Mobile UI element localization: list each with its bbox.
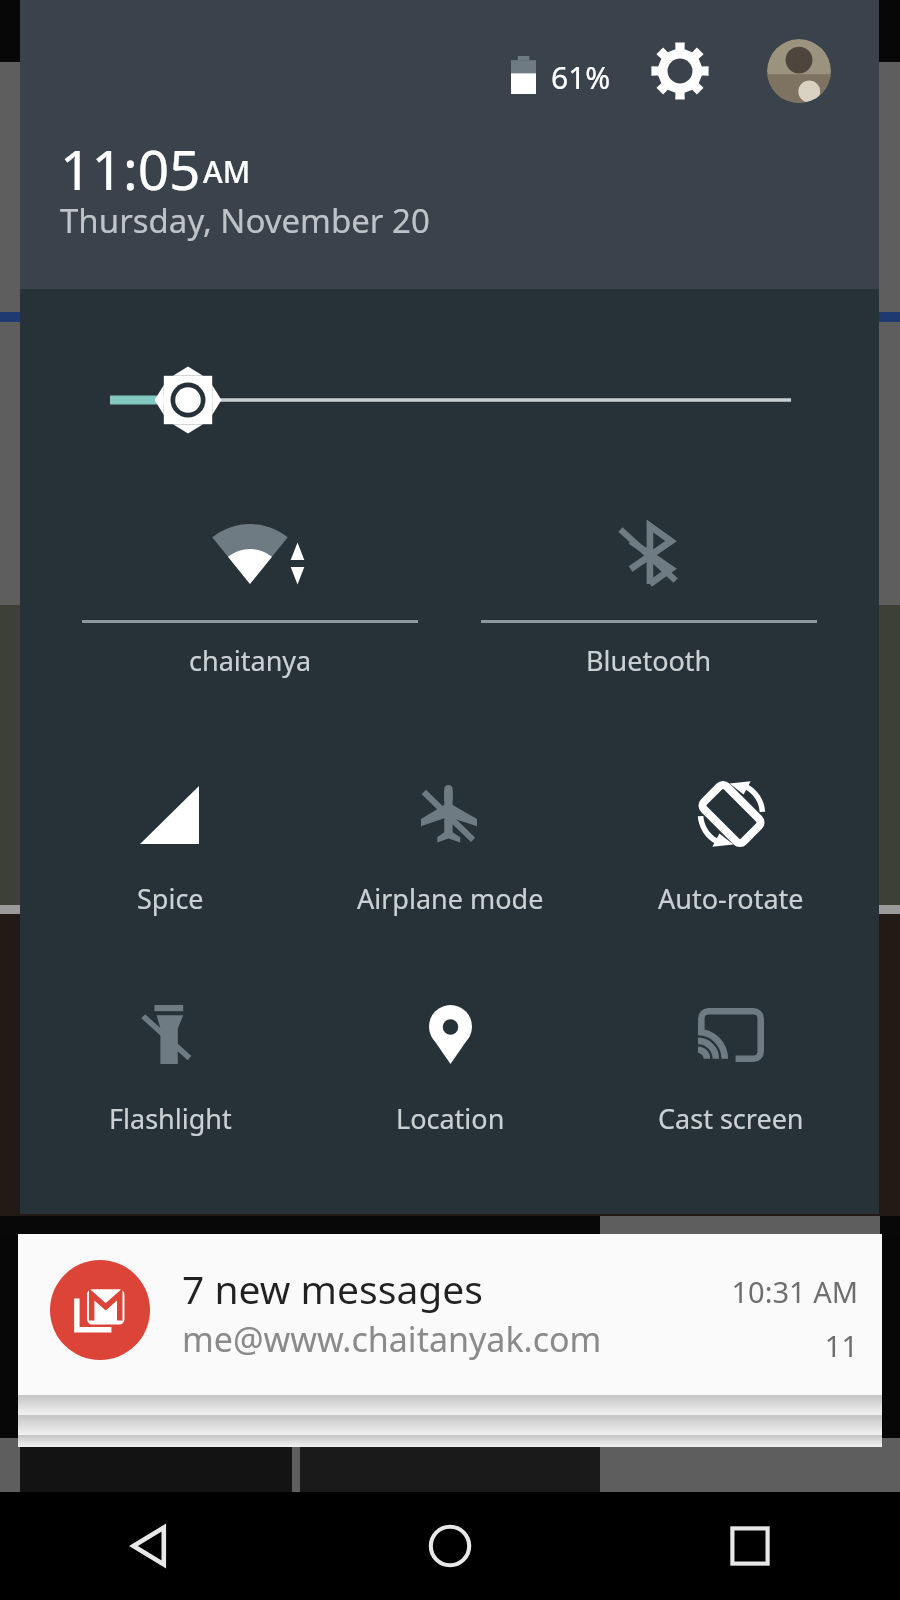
staticText: me@www.chaitanyak.com <box>182 1316 602 1362</box>
staticText: 7 new messages <box>182 1262 483 1315</box>
button[interactable]: Settings <box>645 36 715 106</box>
button[interactable] <box>50 980 290 1150</box>
staticText: Spice <box>137 880 204 917</box>
button[interactable]: Recent apps <box>600 1492 900 1600</box>
button[interactable]: User profile <box>767 39 831 103</box>
button[interactable]: Back <box>0 1492 300 1600</box>
button[interactable] <box>611 980 851 1150</box>
staticText: Airplane mode <box>357 880 544 917</box>
staticText: 10:31 AM <box>698 1272 858 1311</box>
staticText: Location <box>396 1100 505 1137</box>
button[interactable]: 7 new messages <box>18 1234 882 1395</box>
staticText: AM <box>203 151 251 192</box>
staticText: Thursday, November 20 <box>60 198 430 243</box>
button[interactable] <box>330 760 570 930</box>
staticText: Cast screen <box>658 1100 804 1137</box>
staticText: chaitanya <box>189 642 312 679</box>
staticText: Auto-rotate <box>658 880 804 917</box>
button[interactable] <box>481 500 817 690</box>
staticText: 61% <box>551 57 611 98</box>
button[interactable] <box>330 980 570 1150</box>
staticText: Flashlight <box>109 1100 232 1137</box>
staticText: 11 <box>698 1326 858 1365</box>
staticText: 11:05 <box>60 131 201 206</box>
staticText: Bluetooth <box>586 642 712 679</box>
button[interactable] <box>50 760 290 930</box>
button[interactable]: Home <box>300 1492 600 1600</box>
button[interactable] <box>611 760 851 930</box>
button[interactable] <box>82 500 418 690</box>
